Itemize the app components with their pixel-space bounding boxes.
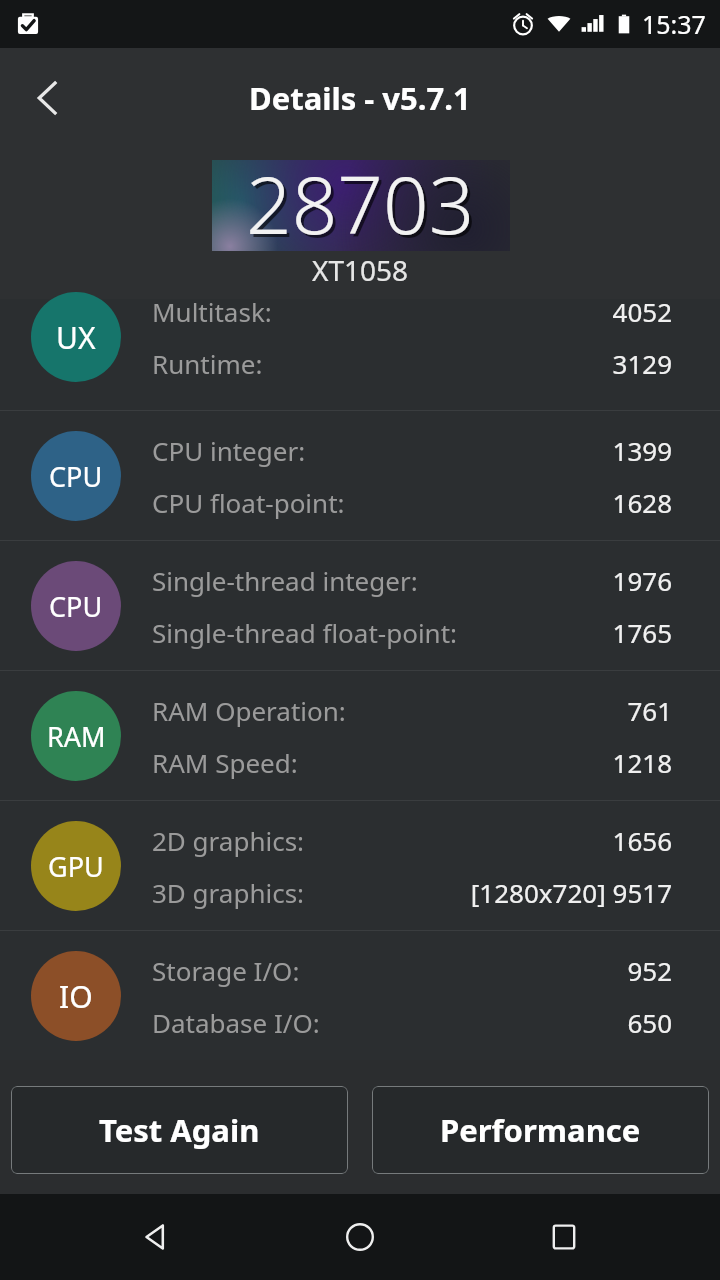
button[interactable]: IO [0,931,720,1060]
staticText: CPU [49,588,103,625]
staticText: 28703 [249,151,478,254]
staticText: 2D graphics: [152,823,305,858]
staticText: Database I/O: [152,1005,320,1040]
staticText: 1628 [612,485,672,520]
button[interactable]: Home [312,1194,408,1280]
staticText: Runtime: [152,346,263,381]
staticText: RAM Operation: [152,693,346,728]
staticText: 952 [627,953,672,988]
button[interactable]: RAM [0,671,720,800]
button[interactable]: UX [0,299,720,410]
staticText: Multitask: [152,294,272,329]
button[interactable]: GPU [0,801,720,930]
staticText: 3D graphics: [152,875,305,910]
staticText: 1399 [612,433,672,468]
staticText: RAM [47,718,106,755]
staticText: 28703 [246,148,475,251]
staticText: CPU integer: [152,433,306,468]
staticText: CPU [49,458,103,495]
button[interactable]: Back [0,48,96,148]
staticText: XT1058 [312,251,409,289]
staticText: Performance [440,1109,641,1151]
staticText: Test Again [99,1109,260,1151]
staticText: Storage I/O: [152,953,300,988]
staticText: Details - v5.7.1 [249,77,471,119]
staticText: 1656 [612,823,672,858]
button[interactable]: Back [108,1194,204,1280]
button[interactable]: Test Again [11,1086,348,1174]
button[interactable]: CPU [0,411,720,540]
staticText: 761 [627,693,672,728]
button[interactable]: Performance [372,1086,709,1174]
staticText: RAM Speed: [152,745,298,780]
staticText: UX [56,317,96,358]
button[interactable]: Recent apps [516,1194,612,1280]
staticText: 15:37 [642,7,706,41]
button[interactable]: CPU [0,541,720,670]
staticText: 3129 [612,346,672,381]
staticText: 4052 [612,294,672,329]
staticText: 1976 [612,563,672,598]
staticText: CPU float-point: [152,485,345,520]
staticText: 1218 [612,745,672,780]
staticText: Single-thread float-point: [152,615,458,650]
staticText: IO [59,976,93,1017]
staticText: 1765 [612,615,672,650]
staticText: 650 [627,1005,672,1040]
staticText: [1280x720] 9517 [470,875,672,910]
staticText: Single-thread integer: [152,563,418,598]
staticText: GPU [48,848,104,885]
